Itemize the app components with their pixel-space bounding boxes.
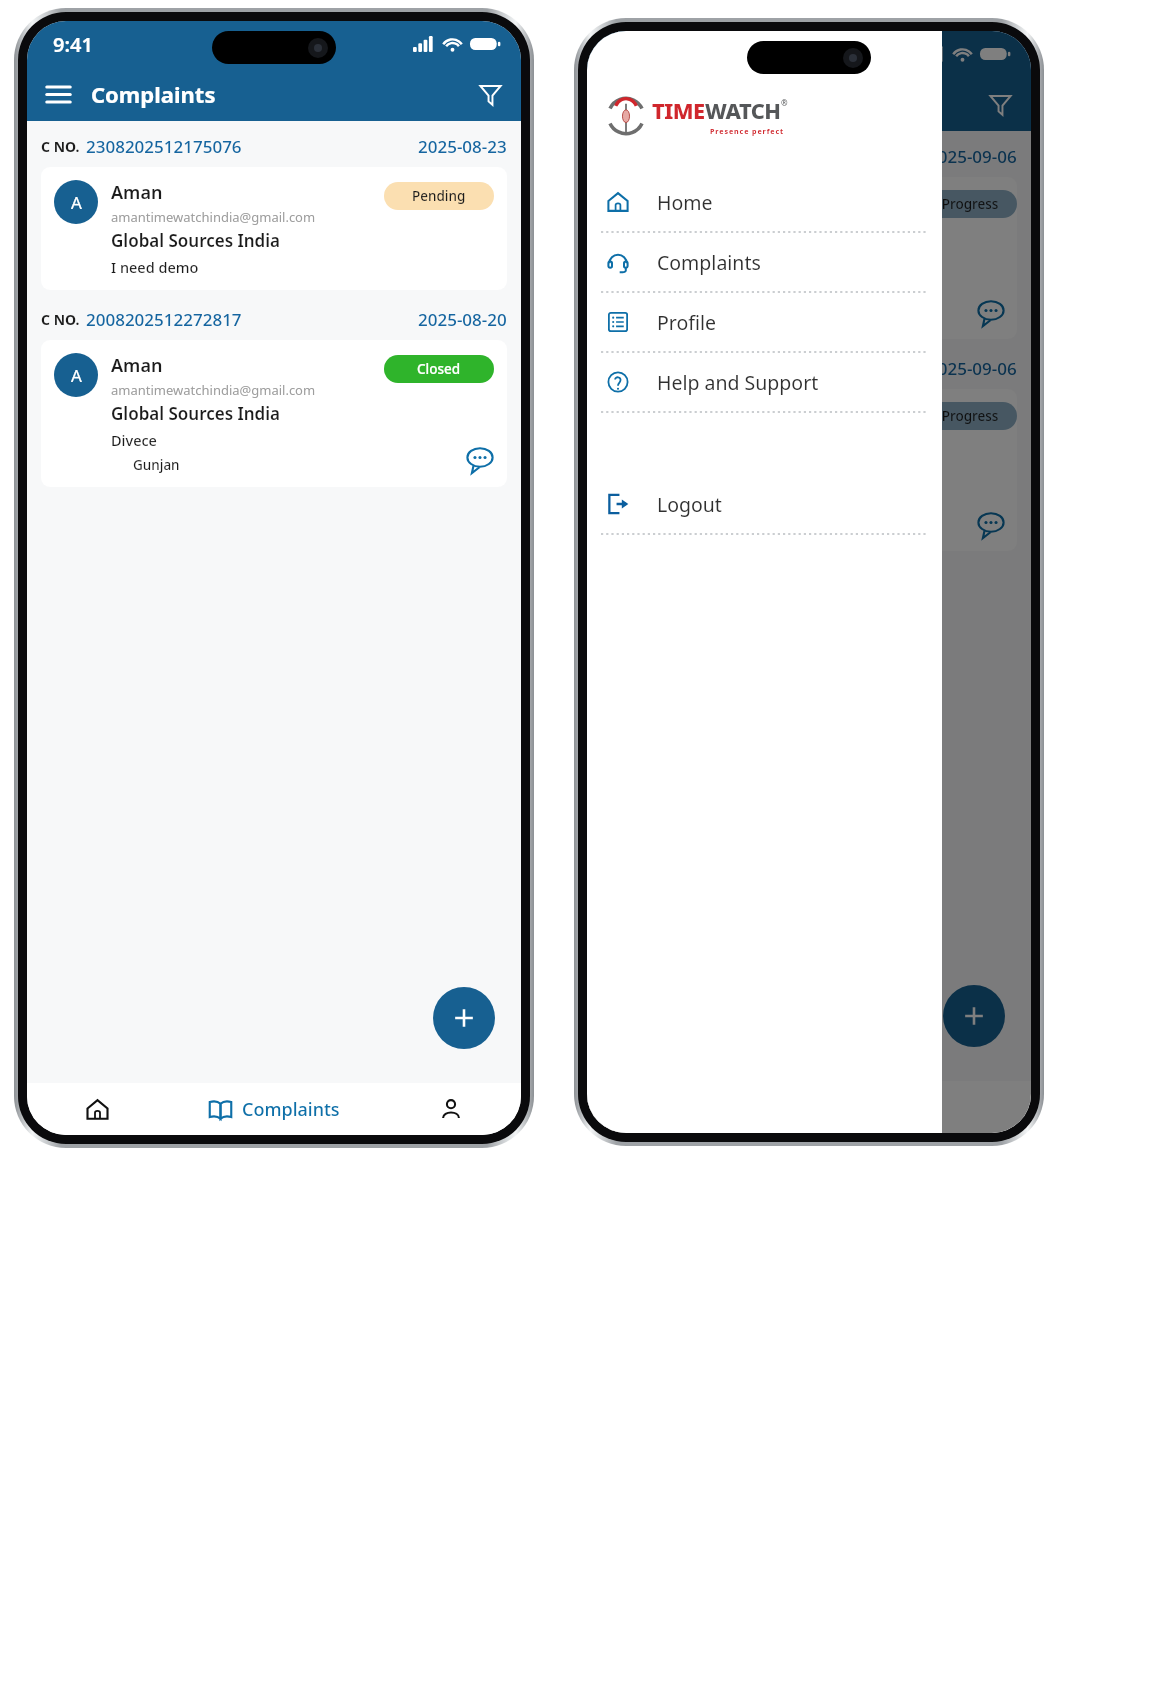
button[interactable]: Home [587,173,942,231]
staticText: A [71,364,82,387]
staticText: 2025-09-06 [928,145,1017,168]
staticText: 2308202512175076 [86,135,242,158]
staticText: WATCH [705,96,781,126]
staticText: Closed [417,360,461,378]
staticText: 2025-09-06 [928,357,1017,380]
staticText: amantimewatchindia@gmail.com [111,208,316,226]
button[interactable]: Complaints [168,1083,380,1135]
staticText: In Progress [925,195,999,213]
staticText: Logout [657,491,722,518]
staticText: 2008202512272817 [86,308,242,331]
staticText: I need demo [111,257,199,277]
staticText: C NO. [41,310,80,329]
staticText: Complaints [242,1097,340,1122]
button[interactable]: Menu [41,77,75,111]
button[interactable]: Add complaint [433,987,495,1049]
button[interactable]: Home [27,1083,168,1135]
staticText: Presence perfect [710,126,785,136]
staticText: A [71,191,82,214]
staticText: 2025-08-20 [418,308,507,331]
staticText: Global Sources India [111,229,280,252]
staticText: 2025-08-23 [418,135,507,158]
staticText: Pending [412,187,466,205]
staticText: TIME [652,96,705,126]
button[interactable]: Chat [466,446,494,474]
button[interactable]: Closed [384,355,494,383]
button[interactable]: Help and Support [587,353,942,411]
button[interactable]: A [41,167,507,290]
button[interactable]: Filter [473,77,507,111]
button[interactable]: A [41,340,507,487]
staticText: In Progress [925,407,999,425]
button[interactable]: Pending [384,182,494,210]
staticText: ® [781,97,788,108]
staticText: Aman [111,180,163,205]
staticText: Gunjan [133,456,180,474]
button[interactable]: Profile [380,1083,521,1135]
button[interactable]: Profile [587,293,942,351]
staticText: Complaints [91,79,216,109]
staticText: Complaints [657,249,761,276]
staticText: Aman [111,353,163,378]
staticText: Profile [657,309,717,336]
staticText: C NO. [41,137,80,156]
staticText: Global Sources India [111,402,280,425]
staticText: 9:41 [53,31,93,58]
staticText: Help and Support [657,369,819,396]
staticText: Home [657,189,713,216]
staticText: Divece [111,430,157,450]
staticText: amantimewatchindia@gmail.com [111,381,316,399]
button[interactable]: Logout [587,475,942,533]
button[interactable]: Complaints [587,233,942,291]
